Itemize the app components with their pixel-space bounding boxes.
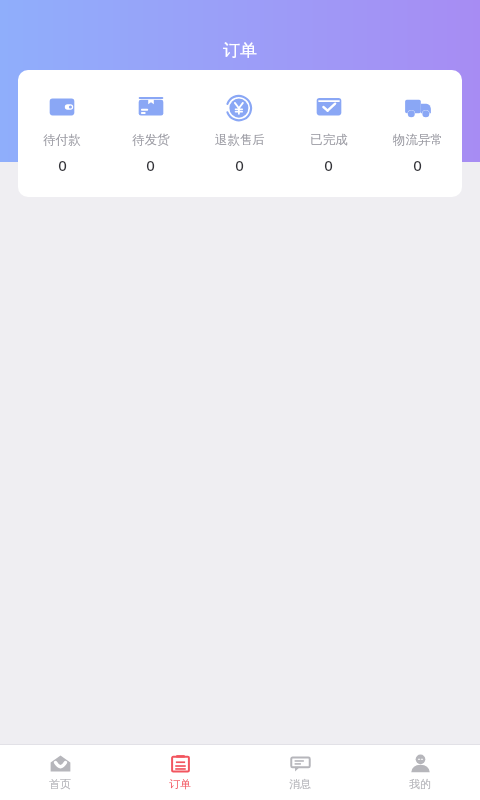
staticText: 0 (146, 155, 155, 175)
other: 我的 (410, 753, 431, 774)
staticText: 已完成 (310, 132, 348, 148)
staticText: 0 (324, 155, 333, 175)
button[interactable]: 消息 (240, 745, 360, 800)
other: 订单 (170, 753, 191, 774)
staticText: 0 (58, 155, 67, 175)
staticText: 订单 (223, 40, 257, 61)
button[interactable]: 物流异常 (373, 92, 462, 197)
button[interactable]: 我的 (360, 745, 480, 800)
button[interactable]: 退款售后 (195, 92, 284, 197)
staticText: 首页 (49, 777, 71, 791)
button[interactable]: 待付款 (18, 92, 106, 197)
other: 消息 (290, 753, 311, 774)
staticText: 待发货 (132, 132, 170, 148)
button[interactable]: 订单 (120, 745, 240, 800)
staticText: 我的 (409, 777, 431, 791)
staticText: 退款售后 (215, 132, 265, 148)
button[interactable]: 首页 (0, 745, 120, 800)
staticText: 待付款 (43, 132, 81, 148)
staticText: 消息 (289, 777, 311, 791)
staticText: 物流异常 (393, 132, 443, 148)
other: 首页 (50, 753, 71, 774)
staticText: 0 (413, 155, 422, 175)
button[interactable]: 已完成 (284, 92, 373, 197)
staticText: 订单 (169, 777, 191, 791)
button[interactable]: 待发货 (106, 92, 195, 197)
staticText: 0 (235, 155, 244, 175)
